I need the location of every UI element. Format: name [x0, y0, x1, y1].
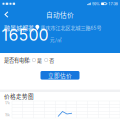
staticText: 自动估价	[46, 10, 74, 19]
button[interactable]: 是	[32, 56, 42, 63]
staticText: 立即估价	[48, 71, 72, 79]
staticText: 16500	[1, 25, 48, 44]
staticText: 17k	[5, 101, 10, 105]
staticText: 融景城都荟	[4, 23, 34, 32]
button[interactable]: 返回	[0, 8, 13, 21]
staticText: 15k	[5, 113, 10, 117]
staticText: 重庆市江北区北城三路65号	[41, 24, 102, 31]
button[interactable]: 立即估价	[40, 71, 79, 80]
staticText: 59%	[92, 1, 100, 6]
staticText: 是否有电梯:	[4, 56, 30, 64]
staticText: 元/㎡	[50, 36, 62, 43]
staticText: 价格走势图	[4, 92, 34, 100]
staticText: 是	[37, 56, 42, 63]
staticText: 17:38	[108, 1, 117, 6]
staticText: 否	[49, 56, 54, 63]
button[interactable]: 否	[44, 56, 54, 63]
